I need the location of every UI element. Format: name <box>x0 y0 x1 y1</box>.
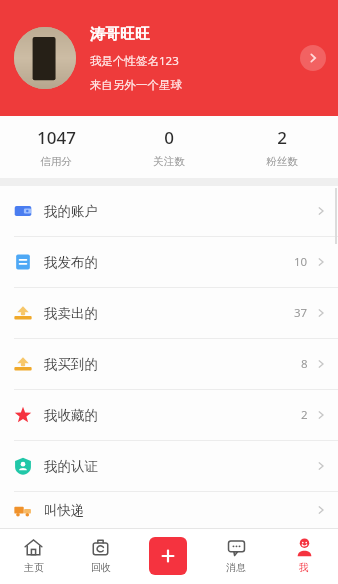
button[interactable]: Add <box>149 537 187 575</box>
staticText: 我买到的 <box>44 356 98 373</box>
button[interactable]: 我卖出的 <box>0 288 338 338</box>
staticText: 10 <box>294 254 308 270</box>
staticText: 我卖出的 <box>44 305 98 322</box>
button[interactable]: 我的认证 <box>0 441 338 491</box>
staticText: 关注数 <box>153 155 185 168</box>
staticText: 我 <box>299 561 309 574</box>
staticText: 粉丝数 <box>266 155 298 168</box>
button[interactable]: Avatar <box>14 27 76 89</box>
staticText: 我的认证 <box>44 458 98 475</box>
staticText: 来自另外一个星球 <box>90 78 182 92</box>
button[interactable]: 回收 <box>67 528 134 584</box>
button[interactable]: Edit profile <box>300 45 326 71</box>
staticText: 我的账户 <box>44 203 98 220</box>
button[interactable]: 我发布的 <box>0 237 338 287</box>
button[interactable]: 我 <box>270 528 338 584</box>
staticText: 37 <box>294 305 308 321</box>
staticText: 消息 <box>226 561 246 574</box>
staticText: 回收 <box>91 561 111 574</box>
button[interactable]: 消息 <box>202 528 270 584</box>
button[interactable]: 0 <box>112 116 225 178</box>
button[interactable]: 2 <box>225 116 338 178</box>
staticText: 叫快递 <box>44 502 85 519</box>
button[interactable]: 我的账户 <box>0 186 338 236</box>
button[interactable]: 1047 <box>0 116 112 178</box>
staticText: 我发布的 <box>44 254 98 271</box>
staticText: 2 <box>301 407 308 423</box>
staticText: 信用分 <box>40 155 72 168</box>
staticText: 我收藏的 <box>44 407 98 424</box>
button[interactable]: 我收藏的 <box>0 390 338 440</box>
staticText: 主页 <box>24 561 44 574</box>
staticText: 涛哥旺旺 <box>90 25 150 44</box>
staticText: 0 <box>164 126 174 149</box>
staticText: 1047 <box>37 126 76 149</box>
staticText: 我是个性签名123 <box>90 53 179 69</box>
button[interactable]: 叫快递 <box>0 492 338 528</box>
button[interactable]: 主页 <box>0 528 67 584</box>
staticText: 2 <box>277 126 287 149</box>
button[interactable]: 我买到的 <box>0 339 338 389</box>
staticText: 8 <box>301 356 308 372</box>
